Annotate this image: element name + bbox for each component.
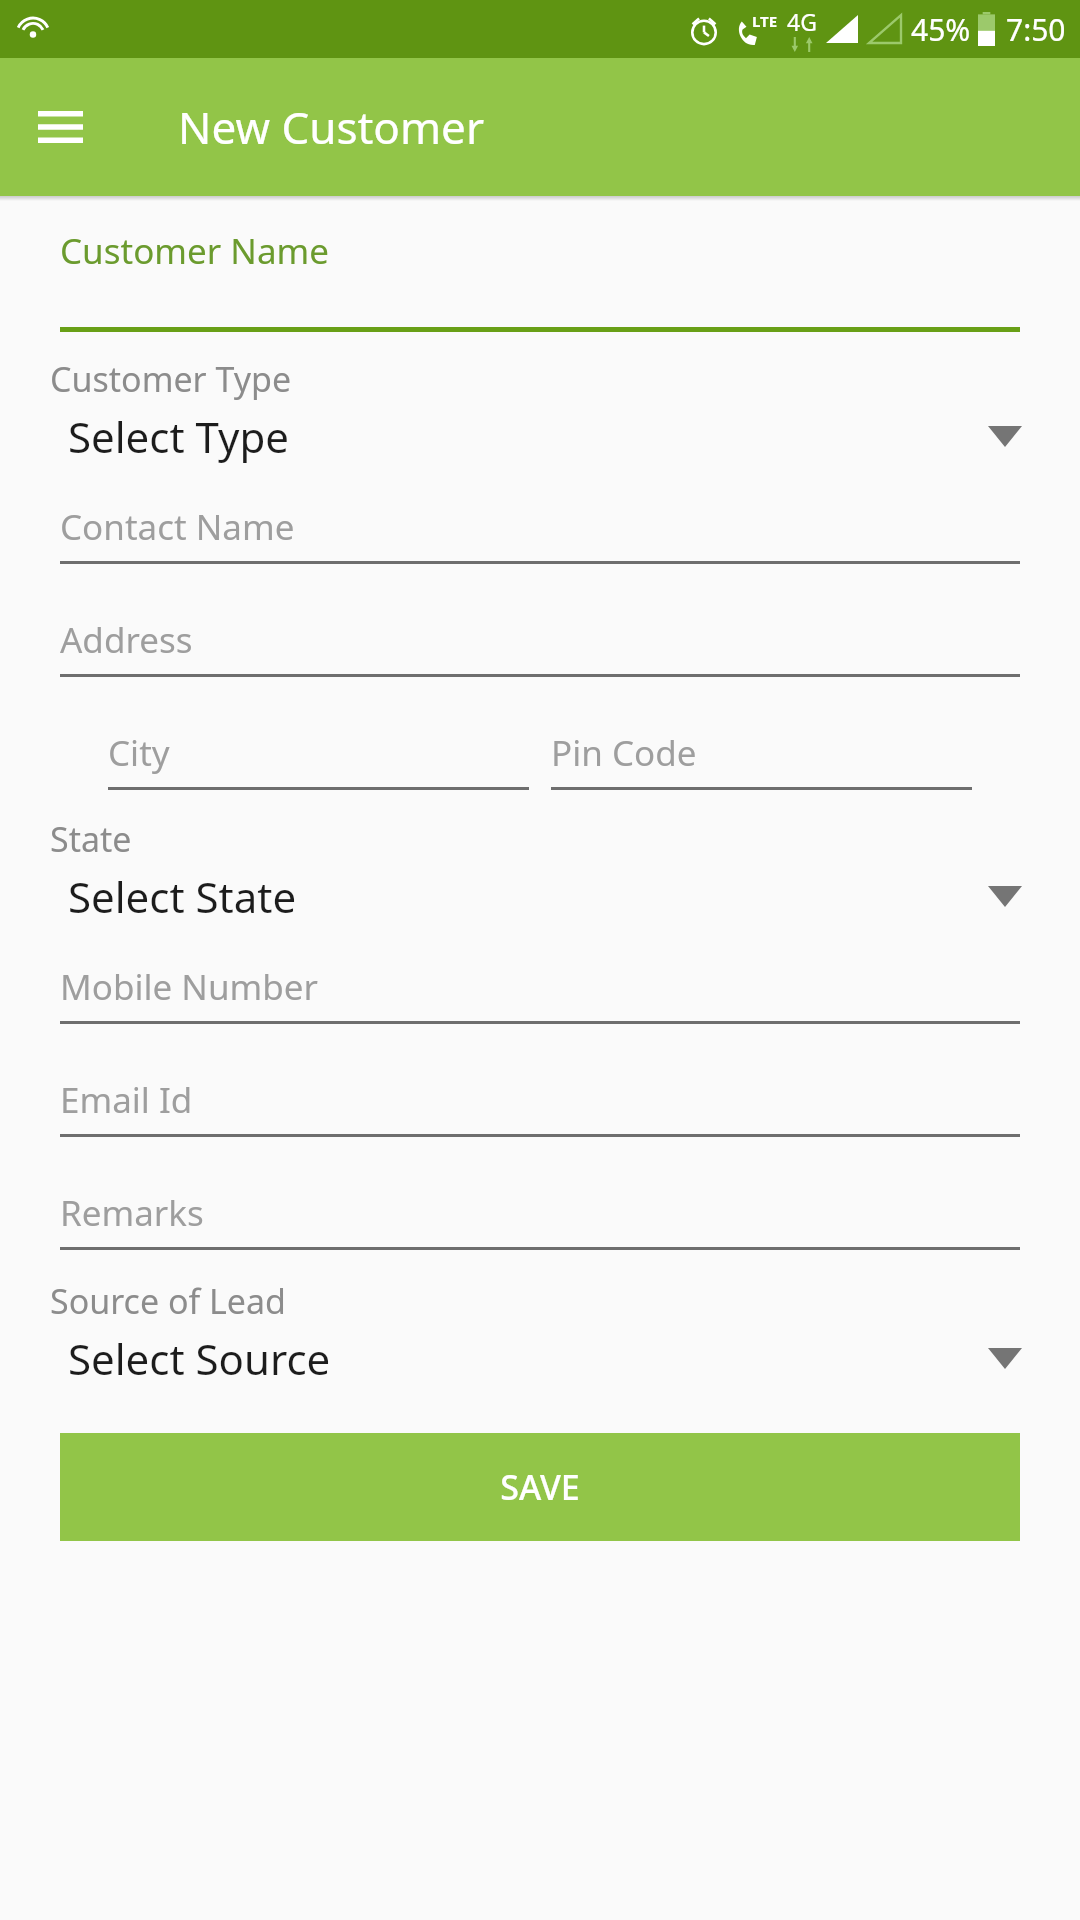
- staticText: City: [108, 729, 170, 777]
- button[interactable]: SAVE: [60, 1433, 1020, 1541]
- staticText: Customer Type: [50, 356, 292, 402]
- button[interactable]: Address: [60, 616, 1020, 677]
- button[interactable]: Source of Lead: [0, 1278, 1080, 1387]
- button[interactable]: Customer Type: [0, 356, 1080, 465]
- button[interactable]: Email Id: [60, 1076, 1020, 1137]
- staticText: Contact Name: [60, 503, 295, 551]
- staticText: Source of Lead: [50, 1278, 287, 1324]
- button[interactable]: Mobile Number: [60, 963, 1020, 1024]
- staticText: Pin Code: [551, 729, 697, 777]
- button[interactable]: Contact Name: [60, 503, 1020, 564]
- staticText: 7:50: [1006, 9, 1066, 50]
- staticText: Select Type: [68, 408, 289, 465]
- button[interactable]: Remarks: [60, 1189, 1020, 1250]
- button[interactable]: Address: [60, 616, 1020, 677]
- staticText: LTE: [752, 11, 778, 31]
- staticText: Email Id: [60, 1076, 193, 1124]
- button[interactable]: Customer Name: [0, 227, 1080, 332]
- staticText: 45%: [911, 9, 971, 50]
- staticText: Mobile Number: [60, 963, 319, 1011]
- staticText: Select Source: [68, 1330, 331, 1387]
- button[interactable]: Mobile Number: [60, 963, 1020, 1024]
- staticText: SAVE: [500, 1464, 580, 1510]
- staticText: Select State: [68, 868, 297, 925]
- staticText: New Customer: [178, 97, 485, 157]
- button[interactable]: Contact Name: [60, 503, 1020, 564]
- button[interactable]: City: [108, 729, 529, 790]
- button[interactable]: Remarks: [60, 1189, 1020, 1250]
- staticText: 4G: [787, 6, 817, 37]
- staticText: State: [50, 816, 132, 862]
- button[interactable]: Open navigation drawer: [24, 91, 96, 163]
- staticText: Customer Name: [60, 227, 330, 275]
- button[interactable]: Pin Code: [551, 729, 972, 790]
- button[interactable]: State: [0, 816, 1080, 925]
- staticText: Remarks: [60, 1189, 204, 1237]
- staticText: Address: [60, 616, 193, 664]
- button[interactable]: Email Id: [60, 1076, 1020, 1137]
